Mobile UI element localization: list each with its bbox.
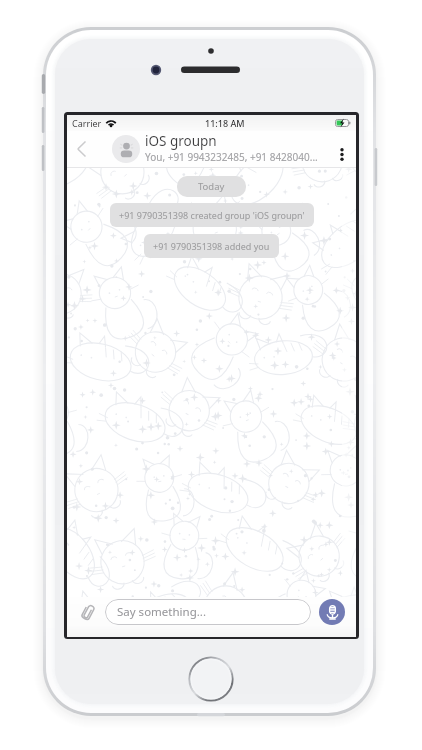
button[interactable]: More options [328, 131, 356, 167]
staticText: Carrier [72, 117, 102, 129]
button[interactable]: Say something... [105, 599, 311, 625]
staticText: You, +91 9943232485, +91 8428040... [145, 150, 318, 164]
button[interactable]: Attach file [73, 597, 103, 627]
button[interactable]: Record voice message [319, 599, 345, 625]
staticText: Today [198, 180, 225, 193]
staticText: 11:18 AM [205, 117, 245, 129]
staticText: iOS groupn [145, 132, 217, 150]
staticText: Say something... [117, 604, 206, 620]
button[interactable]: Back [67, 131, 95, 167]
staticText: +91 9790351398 added you [153, 240, 270, 252]
staticText: +91 9790351398 created group 'iOS groupn… [119, 209, 305, 221]
